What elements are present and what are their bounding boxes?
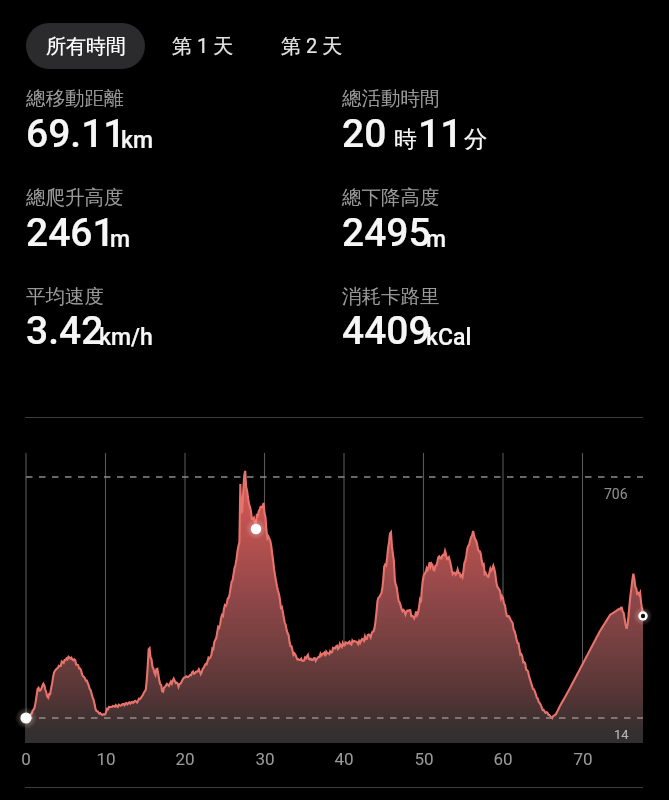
staticText: 40 [314, 749, 374, 769]
staticText: 706 [604, 486, 628, 502]
staticText: 30 [235, 749, 295, 769]
button[interactable]: 第 2 天 [272, 23, 352, 69]
staticText: 總活動時間 [342, 86, 440, 111]
staticText: 20 [155, 749, 215, 769]
staticText: 總移動距離 [26, 86, 124, 111]
staticText: 10 [76, 749, 136, 769]
staticText: km [121, 127, 154, 154]
staticText: 11 [418, 111, 463, 157]
staticText: 平均速度 [26, 284, 104, 309]
button[interactable]: 所有時間 [26, 23, 145, 69]
staticText: kCal [426, 324, 472, 351]
staticText: 所有時間 [46, 34, 126, 59]
staticText: 分 [464, 125, 487, 154]
staticText: 時 [394, 125, 417, 154]
staticText: 總爬升高度 [26, 185, 124, 210]
staticText: 2495 [342, 210, 431, 256]
staticText: 總下降高度 [342, 185, 440, 210]
staticText: 3.42 [26, 308, 104, 354]
staticText: m [426, 226, 447, 253]
staticText: 20 [342, 111, 387, 157]
staticText: 60 [473, 749, 533, 769]
staticText: km/h [99, 324, 153, 351]
staticText: 4409 [342, 308, 431, 354]
staticText: 第 1 天 [172, 34, 234, 59]
staticText: 第 2 天 [281, 34, 343, 59]
staticText: 0 [0, 749, 56, 769]
button[interactable]: 第 1 天 [163, 23, 243, 69]
staticText: 消耗卡路里 [342, 284, 440, 309]
staticText: 69.11 [26, 111, 126, 157]
staticText: m [110, 226, 131, 253]
staticText: 2461 [26, 210, 115, 256]
staticText: 50 [394, 749, 454, 769]
staticText: 70 [553, 749, 613, 769]
staticText: 14 [614, 727, 629, 742]
